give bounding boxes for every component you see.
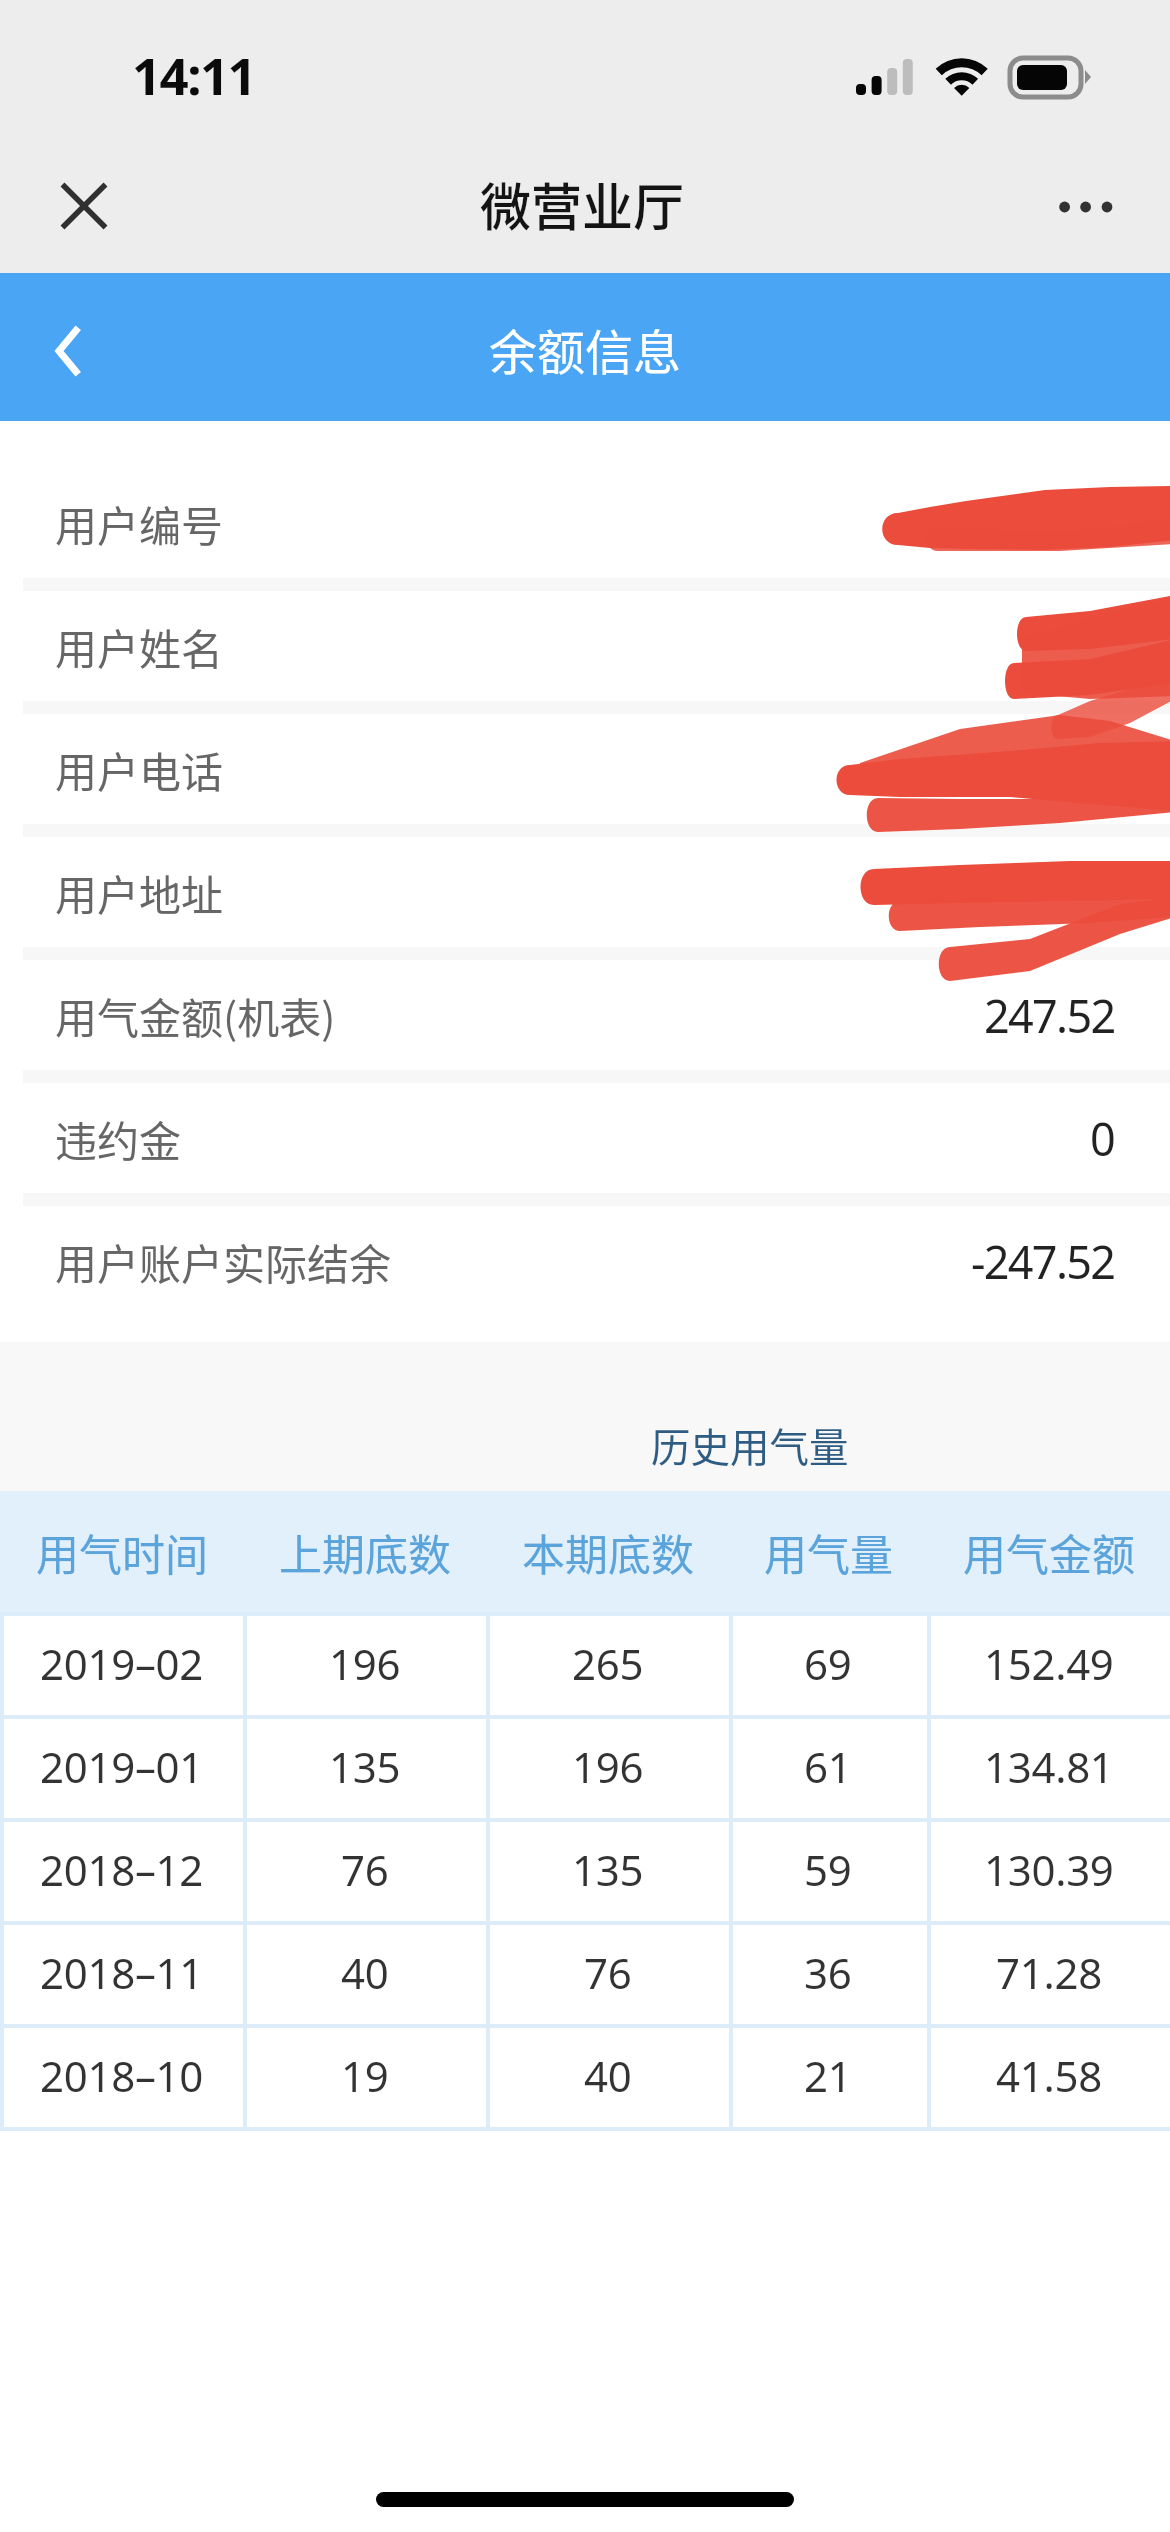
staticText: 247.52 (984, 985, 1115, 1046)
button[interactable]: Close (41, 163, 127, 249)
staticText: 2018–10 (40, 2047, 204, 2104)
button[interactable]: 用户姓名 (0, 591, 1170, 701)
staticText: 21 (804, 2047, 852, 2104)
button[interactable]: 用户电话 (0, 714, 1170, 824)
staticText: 0 (1090, 1108, 1115, 1169)
staticText: 196 (329, 1635, 401, 1692)
staticText: -247.52 (971, 1231, 1115, 1292)
staticText: 用气时间 (36, 1521, 208, 1583)
button[interactable]: 违约金 (0, 1083, 1170, 1193)
staticText: 135 (329, 1738, 401, 1795)
staticText: 71.28 (996, 1944, 1102, 2001)
staticText: 历史用气量 (651, 1416, 849, 1473)
staticText: 40 (341, 1944, 389, 2001)
staticText: 用户地址 (55, 862, 224, 923)
staticText: 用户账户实际结余 (55, 1231, 392, 1292)
staticText: 61 (804, 1738, 852, 1795)
staticText: 2019–02 (40, 1635, 204, 1692)
staticText: 余额信息 (0, 314, 1170, 384)
staticText: 2018–11 (40, 1944, 204, 2001)
staticText: 2019–01 (40, 1738, 204, 1795)
staticText: 130.39 (984, 1841, 1114, 1898)
staticText: 用户电话 (55, 739, 224, 800)
staticText: 40 (584, 2047, 632, 2104)
staticText: 59 (804, 1841, 852, 1898)
staticText: 76 (584, 1944, 632, 2001)
staticText: 36 (804, 1944, 852, 2001)
staticText: 152.49 (984, 1635, 1114, 1692)
staticText: 用气金额(机表) (55, 985, 336, 1046)
staticText: 134.81 (984, 1738, 1114, 1795)
staticText: 用户姓名 (55, 616, 224, 677)
staticText: 19 (341, 2047, 389, 2104)
button[interactable]: 用户账户实际结余 (0, 1206, 1170, 1316)
staticText: 本期底数 (522, 1521, 694, 1583)
staticText: 135 (572, 1841, 644, 1898)
button[interactable]: 用气金额(机表) (0, 960, 1170, 1070)
button[interactable]: More options (1043, 164, 1129, 250)
staticText: 196 (572, 1738, 644, 1795)
staticText: 用气量 (764, 1521, 893, 1583)
staticText: 微营业厅 (0, 167, 1167, 241)
staticText: 265 (572, 1635, 644, 1692)
staticText: 2018–12 (40, 1841, 204, 1898)
staticText: 用气金额 (963, 1521, 1135, 1583)
staticText: 41.58 (996, 2047, 1102, 2104)
button[interactable]: Back (22, 301, 122, 401)
button[interactable]: 用户编号 (0, 468, 1170, 578)
staticText: 76 (341, 1841, 389, 1898)
staticText: 上期底数 (279, 1521, 451, 1583)
staticText: 违约金 (55, 1108, 182, 1169)
button[interactable]: 用户地址 (0, 837, 1170, 947)
staticText: 69 (804, 1635, 852, 1692)
staticText: 14:11 (132, 40, 256, 109)
staticText: 用户编号 (55, 493, 224, 554)
